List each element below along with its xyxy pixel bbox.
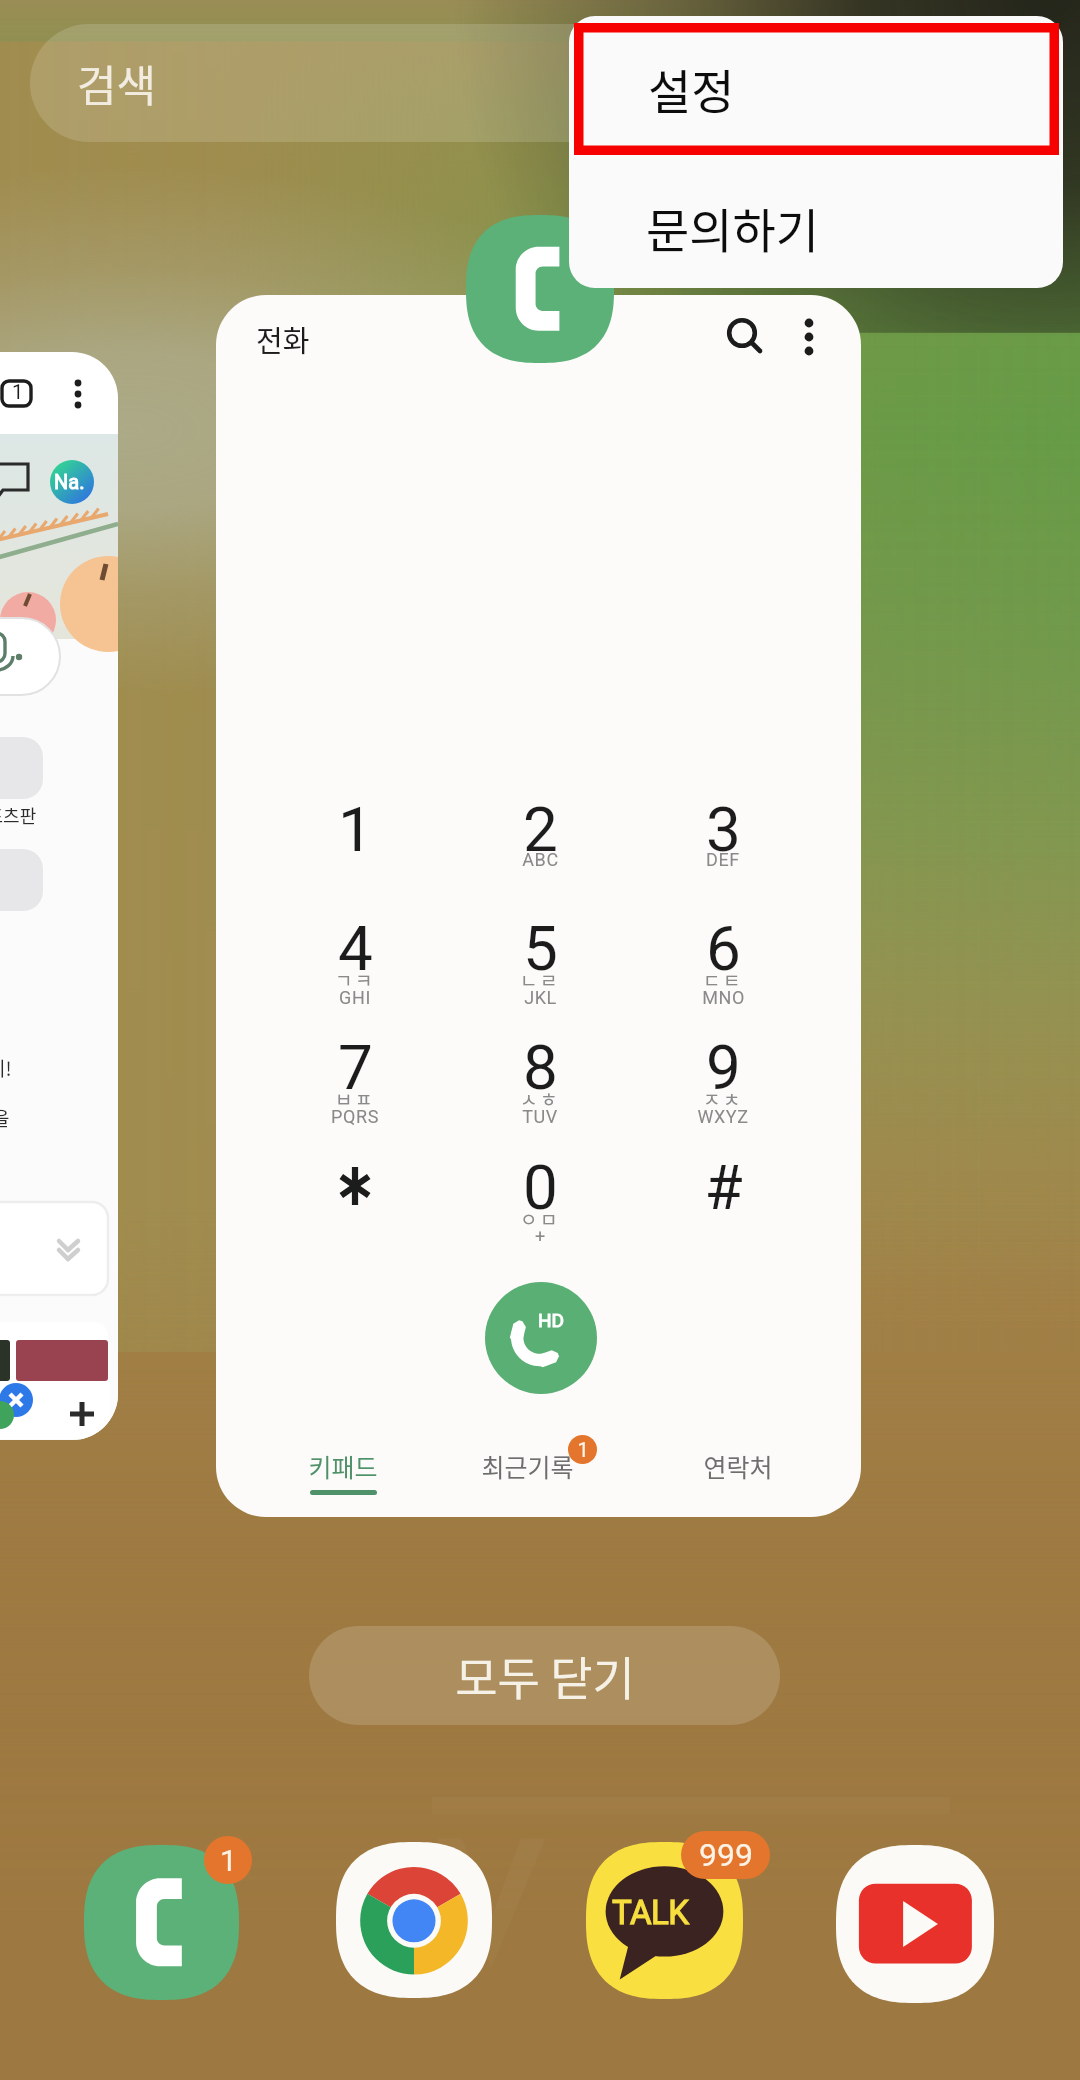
staticText: 최근기록 (481, 1448, 574, 1484)
staticText: GHI (339, 987, 371, 1008)
button[interactable] (465, 793, 615, 911)
staticText: DEF (706, 849, 740, 870)
staticText: 연락처 (703, 1448, 773, 1484)
button[interactable]: 모두 닫기 (309, 1626, 780, 1725)
button[interactable]: Chrome (336, 1842, 492, 1998)
staticText: 모두 닫기 (455, 1642, 635, 1709)
staticText: 스포츠판 (0, 802, 37, 828)
staticText: PQRS (331, 1106, 379, 1127)
staticText: TALK (612, 1893, 689, 1932)
button[interactable]: 연락처 (638, 1425, 838, 1513)
staticText: ㅇㅁ (520, 1205, 560, 1233)
button[interactable] (465, 1031, 615, 1149)
staticText: ㅂㅍ (335, 1085, 375, 1113)
staticText: Na. (54, 470, 85, 493)
staticText: HD (538, 1309, 565, 1331)
staticText: 6 (706, 912, 741, 985)
staticText: 키패드 (308, 1448, 378, 1484)
staticText: 1 (338, 793, 373, 866)
staticText: 999 (699, 1836, 753, 1874)
button[interactable]: 문의하기 (569, 160, 1063, 288)
button[interactable] (648, 1031, 798, 1149)
staticText: 7 (338, 1031, 373, 1104)
staticText: WXYZ (697, 1106, 749, 1127)
button[interactable]: 1 (0, 352, 118, 1440)
staticText: 검색 (77, 52, 157, 114)
staticText: + (535, 1226, 546, 1247)
staticText: JKL (524, 987, 557, 1008)
staticText: 9 (706, 1031, 741, 1104)
staticText: # (704, 1151, 743, 1224)
button[interactable] (648, 1151, 798, 1269)
button[interactable] (280, 1151, 430, 1269)
staticText: 을 (0, 1104, 10, 1132)
staticText: TUV (522, 1106, 558, 1127)
staticText: 설정 (648, 54, 735, 122)
button[interactable] (280, 912, 430, 1030)
button[interactable]: 최근기록 (427, 1425, 627, 1513)
staticText: ㄴㄹ (520, 966, 560, 994)
staticText: 2 (523, 793, 558, 866)
staticText: 기! (0, 1054, 12, 1082)
button[interactable] (465, 1151, 615, 1269)
staticText: MNO (702, 987, 745, 1008)
staticText: ㅅㅎ (520, 1085, 560, 1113)
staticText: 0 (523, 1151, 558, 1224)
staticText: 3 (706, 793, 741, 866)
staticText: 1 (220, 1843, 237, 1878)
staticText: ㄱㅋ (335, 966, 375, 994)
staticText: 전화 (256, 318, 310, 360)
staticText: ㅈㅊ (703, 1085, 743, 1113)
button[interactable]: Phone (84, 1845, 239, 2000)
staticText: ABC (522, 849, 559, 870)
button[interactable] (465, 912, 615, 1030)
button[interactable] (648, 912, 798, 1030)
staticText: 5 (523, 912, 558, 985)
button[interactable]: 검색 (30, 24, 1050, 142)
staticText: 1 (12, 380, 24, 403)
button[interactable]: KakaoTalk (586, 1842, 743, 1999)
button[interactable] (280, 1031, 430, 1149)
staticText: 1 (577, 1438, 589, 1461)
button[interactable]: Search (708, 302, 776, 370)
staticText: 문의하기 (646, 193, 819, 261)
button[interactable]: More options (775, 302, 843, 370)
staticText: ㄷㅌ (703, 966, 743, 994)
button[interactable]: Call (485, 1282, 597, 1394)
button[interactable]: 키패드 (243, 1425, 443, 1513)
button[interactable]: 설정 (569, 16, 1063, 160)
button[interactable] (280, 793, 430, 911)
button[interactable] (648, 793, 798, 911)
button[interactable]: YouTube (836, 1845, 994, 2003)
staticText: 8 (523, 1031, 558, 1104)
staticText: 4 (338, 912, 373, 985)
